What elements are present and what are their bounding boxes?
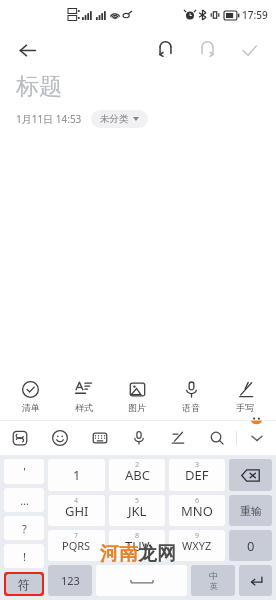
button[interactable]: Sogou [0,421,40,455]
button[interactable]: 0 [229,530,272,561]
button[interactable]: 中 [191,565,235,596]
staticText: GHI [65,502,89,520]
staticText: 河南 [100,542,138,566]
button[interactable]: MNO [169,495,225,526]
button[interactable]: Voice [119,421,158,455]
staticText: JKL [128,502,147,520]
staticText: 1月11日 14:53 [16,112,82,126]
staticText: DEF [185,466,209,484]
button[interactable]: … [4,488,44,512]
staticText: 7 [74,531,79,541]
staticText: 0 [247,537,255,555]
staticText: ' [23,464,26,479]
staticText: 未分类 [100,113,129,125]
button[interactable]: Done [232,33,266,67]
button[interactable]: ' [4,459,44,484]
staticText: 图片 [128,402,146,413]
button[interactable]: 语音 [164,374,218,420]
staticText: 手写 [236,402,254,413]
staticText: 3 [195,460,200,470]
staticText: … [20,493,29,508]
button[interactable]: 样式 [57,374,110,420]
staticText: 样式 [75,402,93,413]
staticText: 中 [209,570,218,581]
staticText: 重输 [240,504,262,518]
button[interactable]: TUV [109,530,165,561]
staticText: 6 [195,496,200,506]
button[interactable]: Redo [190,33,224,67]
button[interactable]: Handwriting [158,421,197,455]
staticText: 1 [73,466,81,484]
staticText: PQRS [62,538,91,553]
staticText: 标题 [16,72,62,101]
button[interactable]: Back [10,33,44,67]
button[interactable]: 符 [6,574,42,594]
staticText: 2 [135,460,140,470]
staticText: 龙网 [138,542,176,566]
staticText: MNO [181,502,213,520]
staticText: 英 [210,581,218,591]
button[interactable]: Space [96,565,187,596]
other: Backspace [241,469,260,482]
button[interactable]: ? [4,516,44,540]
button[interactable]: Hide keyboard [237,421,276,455]
staticText: 5 [135,496,140,506]
staticText: 123 [61,573,80,588]
button[interactable]: Emoji [40,421,80,455]
staticText: 清单 [22,402,40,413]
button[interactable]: 手写 [218,374,272,420]
staticText: WXYZ [182,538,212,553]
button[interactable]: 重输 [229,495,272,526]
staticText: ! [23,549,26,564]
staticText: 语音 [182,402,200,413]
staticText: 4 [74,496,79,506]
button[interactable]: Undo [148,33,182,67]
button[interactable]: 图片 [110,374,164,420]
button[interactable]: Keyboard [80,421,119,455]
button[interactable]: WXYZ [169,530,225,561]
button[interactable]: 123 [48,565,92,596]
staticText: 9 [195,531,200,541]
staticText: TUV [125,537,150,555]
button[interactable]: ! [4,544,44,568]
button[interactable]: DEF [169,459,225,491]
button[interactable] [239,565,272,596]
button[interactable]: PQRS [48,530,105,561]
button[interactable]: Backspace [229,459,272,491]
button[interactable]: 1 [48,459,105,491]
staticText: 符 [18,577,30,592]
button[interactable]: ABC [109,459,165,491]
staticText: ? [22,521,27,536]
staticText: ABC [125,466,150,484]
button[interactable]: Assistant [249,412,264,427]
button[interactable]: 清单 [4,374,57,420]
button[interactable]: JKL [109,495,165,526]
staticText: 17:59 [242,8,268,22]
button[interactable]: GHI [48,495,105,526]
staticText: 8 [135,531,140,541]
button[interactable]: Search [197,421,236,455]
button[interactable]: 未分类 [91,110,148,128]
